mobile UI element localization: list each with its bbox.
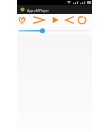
button[interactable]: Play xyxy=(49,14,61,26)
button[interactable]: Seek xyxy=(17,26,92,35)
button[interactable]: Fast forward xyxy=(33,14,45,26)
button[interactable]: Rewind xyxy=(63,14,75,26)
staticText: App.eMPlayer xyxy=(27,8,49,12)
button[interactable]: Shuffle xyxy=(16,14,28,26)
button[interactable]: Repeat xyxy=(76,14,88,26)
